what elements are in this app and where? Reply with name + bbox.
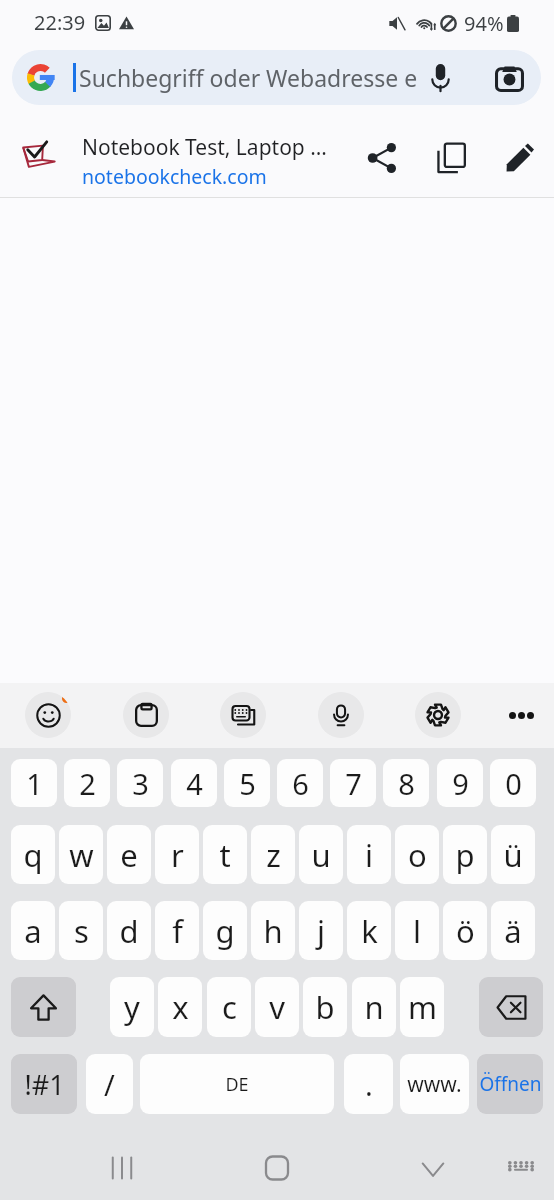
button[interactable]: 6 bbox=[277, 759, 323, 807]
button[interactable]: Change keyboard bbox=[495, 1135, 547, 1200]
button[interactable]: Copy bbox=[429, 136, 473, 180]
button[interactable]: g bbox=[203, 901, 247, 960]
staticText: 2 bbox=[79, 764, 96, 803]
button[interactable]: b bbox=[303, 977, 347, 1037]
staticText: i bbox=[365, 834, 373, 876]
staticText: s bbox=[74, 910, 89, 952]
staticText: 8 bbox=[398, 764, 415, 803]
staticText: !#1 bbox=[24, 1066, 65, 1103]
button[interactable]: p bbox=[443, 825, 487, 884]
button[interactable]: n bbox=[352, 977, 396, 1037]
staticText: o bbox=[408, 834, 427, 876]
button[interactable]: Clipboard bbox=[123, 692, 169, 738]
button[interactable]: Stickers bbox=[220, 692, 266, 738]
button[interactable]: Backspace bbox=[479, 977, 543, 1037]
button[interactable]: Öffnen bbox=[477, 1054, 543, 1114]
button[interactable]: u bbox=[299, 825, 343, 884]
button[interactable]: ä bbox=[491, 901, 535, 960]
button[interactable]: a bbox=[11, 901, 55, 960]
button[interactable]: Shift bbox=[11, 977, 76, 1037]
staticText: 5 bbox=[239, 764, 256, 803]
button[interactable]: o bbox=[395, 825, 439, 884]
staticText: n bbox=[364, 986, 384, 1028]
button[interactable]: Recents bbox=[96, 1135, 148, 1200]
button[interactable]: s bbox=[59, 901, 103, 960]
staticText: g bbox=[215, 910, 235, 952]
staticText: 3 bbox=[132, 764, 149, 803]
button[interactable]: Hide keyboard bbox=[407, 1135, 459, 1200]
staticText: h bbox=[263, 910, 283, 952]
button[interactable]: Edit bbox=[498, 136, 542, 180]
button[interactable]: 9 bbox=[437, 759, 483, 807]
staticText: y bbox=[124, 986, 140, 1028]
button[interactable]: x bbox=[158, 977, 202, 1037]
button[interactable]: m bbox=[400, 977, 444, 1037]
button[interactable]: v bbox=[255, 977, 299, 1037]
button[interactable]: Share bbox=[360, 136, 404, 180]
button[interactable]: . bbox=[344, 1054, 393, 1114]
button[interactable]: q bbox=[11, 825, 55, 884]
staticText: c bbox=[222, 986, 237, 1028]
button[interactable]: Notebook Test, Laptop … bbox=[0, 105, 554, 197]
staticText: Öffnen bbox=[479, 1071, 542, 1097]
button[interactable]: k bbox=[347, 901, 391, 960]
button[interactable]: l bbox=[395, 901, 439, 960]
button[interactable]: DE bbox=[140, 1054, 334, 1114]
staticText: 94% bbox=[464, 10, 504, 37]
button[interactable]: www. bbox=[400, 1054, 469, 1114]
staticText: l bbox=[413, 910, 421, 952]
staticText: 9 bbox=[452, 764, 469, 803]
staticText: ö bbox=[456, 910, 475, 952]
button[interactable]: Emoji bbox=[25, 692, 71, 738]
staticText: x bbox=[172, 986, 189, 1028]
button[interactable]: 7 bbox=[330, 759, 376, 807]
button[interactable]: h bbox=[251, 901, 295, 960]
staticText: a bbox=[24, 910, 42, 952]
button[interactable]: Voice search bbox=[418, 56, 462, 100]
staticText: z bbox=[266, 834, 281, 876]
button[interactable]: !#1 bbox=[11, 1054, 77, 1114]
button[interactable]: 2 bbox=[64, 759, 110, 807]
button[interactable]: r bbox=[155, 825, 199, 884]
button[interactable]: 0 bbox=[490, 759, 536, 807]
button[interactable]: 5 bbox=[224, 759, 270, 807]
button[interactable]: Settings bbox=[415, 692, 461, 738]
staticText: k bbox=[361, 910, 378, 952]
button[interactable]: w bbox=[59, 825, 103, 884]
button[interactable]: Suchbegriff oder Webadresse ein bbox=[12, 50, 541, 105]
button[interactable]: e bbox=[107, 825, 151, 884]
staticText: 22:39 bbox=[34, 9, 86, 36]
button[interactable]: More options bbox=[498, 683, 544, 748]
staticText: b bbox=[315, 986, 335, 1028]
staticText: r bbox=[171, 834, 184, 876]
staticText: j bbox=[317, 910, 325, 952]
button[interactable]: Home bbox=[251, 1135, 303, 1200]
staticText: d bbox=[119, 910, 139, 952]
staticText: v bbox=[269, 986, 285, 1028]
button[interactable]: ö bbox=[443, 901, 487, 960]
staticText: f bbox=[172, 910, 183, 952]
button[interactable]: 3 bbox=[117, 759, 163, 807]
staticText: ä bbox=[504, 910, 522, 952]
button[interactable]: 8 bbox=[383, 759, 429, 807]
button[interactable]: z bbox=[251, 825, 295, 884]
staticText: Suchbegriff oder Webadresse ein bbox=[79, 62, 418, 93]
staticText: . bbox=[365, 1065, 373, 1104]
button[interactable]: ü bbox=[491, 825, 535, 884]
staticText: DE bbox=[225, 1072, 249, 1097]
button[interactable]: / bbox=[86, 1054, 133, 1114]
button[interactable]: d bbox=[107, 901, 151, 960]
button[interactable]: y bbox=[110, 977, 154, 1037]
button[interactable]: t bbox=[203, 825, 247, 884]
button[interactable]: i bbox=[347, 825, 391, 884]
button[interactable]: 1 bbox=[11, 759, 57, 807]
staticText: w bbox=[69, 834, 94, 876]
staticText: 4 bbox=[186, 764, 203, 803]
button[interactable]: Voice input bbox=[318, 692, 364, 738]
button[interactable]: 4 bbox=[171, 759, 217, 807]
button[interactable]: f bbox=[155, 901, 199, 960]
staticText: Notebook Test, Laptop … bbox=[82, 133, 327, 162]
button[interactable]: Search with camera bbox=[487, 56, 531, 100]
button[interactable]: j bbox=[299, 901, 343, 960]
button[interactable]: c bbox=[207, 977, 251, 1037]
